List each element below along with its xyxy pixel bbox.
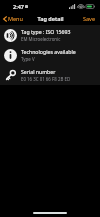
staticText: EM Microelectronic [21,36,61,42]
staticText: 2:47 [13,3,24,10]
button[interactable]: NFC tag type [0,25,100,45]
button[interactable]: Menu [0,13,27,24]
staticText: E0 16 3C 01 66 F8 2B ED [21,76,71,82]
staticText: Tag type : ISO 15693 [21,28,71,35]
button[interactable]: Save [79,13,100,24]
button[interactable]: Technologies information [0,45,100,65]
button[interactable]: Serial number [0,65,100,85]
staticText: Tag detail [37,15,64,22]
staticText: Type V [21,56,35,62]
other: Technologies information [4,49,17,62]
staticText: Menu [8,15,23,22]
staticText: Technologies available [21,48,76,55]
staticText: Serial number [21,68,56,75]
other: Serial number [4,69,17,82]
other: NFC tag type [4,29,17,42]
staticText: Save [83,15,96,22]
